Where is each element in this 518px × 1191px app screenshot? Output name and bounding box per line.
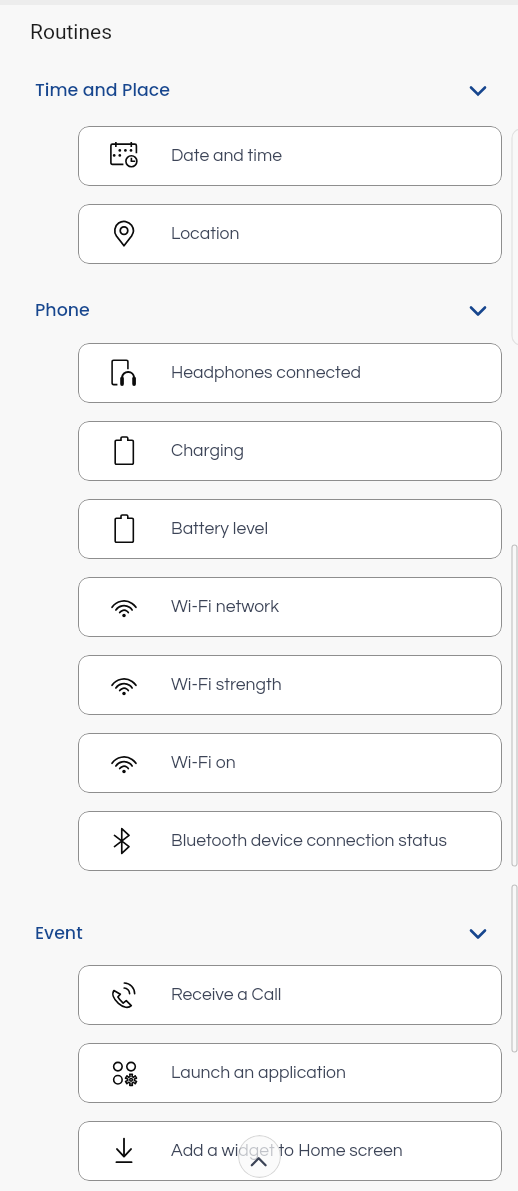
- button[interactable]: Date and time: [78, 126, 502, 186]
- staticText: Date and time: [171, 147, 282, 165]
- button[interactable]: Add a widget to Home screen: [78, 1121, 502, 1181]
- staticText: Location: [171, 225, 240, 243]
- button[interactable]: Wi-Fi network: [78, 577, 502, 637]
- staticText: Phone: [35, 298, 90, 322]
- staticText: Headphones connected: [171, 364, 361, 382]
- button[interactable]: Scroll to top: [238, 1135, 281, 1178]
- button[interactable]: Wi-Fi strength: [78, 655, 502, 715]
- staticText: Routines: [30, 20, 113, 45]
- button[interactable]: Bluetooth device connection status: [78, 811, 502, 871]
- button[interactable]: Location: [78, 204, 502, 264]
- staticText: Add a widget to Home screen: [171, 1142, 403, 1160]
- button[interactable]: Headphones connected: [78, 343, 502, 403]
- button[interactable]: Charging: [78, 421, 502, 481]
- staticText: Time and Place: [35, 78, 171, 102]
- button[interactable]: Battery level: [78, 499, 502, 559]
- button[interactable]: Wi-Fi on: [78, 733, 502, 793]
- staticText: Launch an application: [171, 1064, 346, 1082]
- button[interactable]: Receive a Call: [78, 965, 502, 1025]
- staticText: Battery level: [171, 520, 269, 538]
- button[interactable]: Time and Place: [0, 68, 518, 112]
- button[interactable]: Phone: [0, 288, 518, 332]
- button[interactable]: Event: [0, 911, 518, 955]
- staticText: Charging: [171, 442, 244, 460]
- staticText: Wi-Fi strength: [171, 676, 282, 694]
- staticText: Event: [35, 921, 83, 945]
- staticText: Receive a Call: [171, 986, 282, 1004]
- button[interactable]: Launch an application: [78, 1043, 502, 1103]
- staticText: Bluetooth device connection status: [171, 832, 447, 850]
- staticText: Wi-Fi network: [171, 598, 280, 616]
- staticText: Wi-Fi on: [171, 754, 236, 772]
